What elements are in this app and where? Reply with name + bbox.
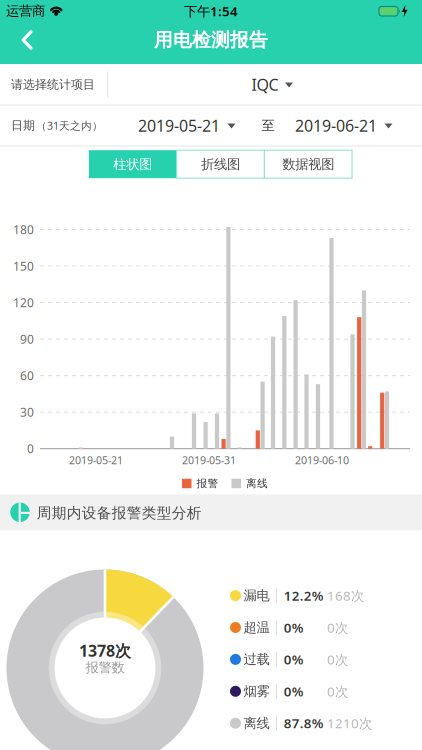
- staticText: 60: [20, 368, 34, 384]
- staticText: 至: [261, 117, 274, 134]
- staticText: 168次: [327, 587, 364, 604]
- staticText: 0次: [327, 650, 348, 668]
- staticText: 0: [27, 441, 34, 457]
- staticText: 30: [20, 404, 34, 420]
- staticText: 90: [20, 331, 34, 347]
- staticText: 87.8%: [284, 714, 324, 732]
- staticText: 1378次: [79, 640, 131, 661]
- button[interactable]: 2019-05-21: [131, 105, 241, 145]
- button[interactable]: 2019-06-21: [288, 105, 398, 145]
- staticText: 2019-06-10: [295, 453, 349, 467]
- staticText: 运营商: [6, 3, 45, 19]
- staticText: 0%: [284, 682, 304, 700]
- staticText: 用电检测报告: [154, 28, 268, 51]
- staticText: 报警数: [85, 659, 124, 676]
- staticText: 150: [13, 258, 34, 274]
- staticText: 2019-05-21: [69, 453, 123, 467]
- staticText: 120: [13, 295, 34, 310]
- staticText: 折线图: [201, 156, 240, 172]
- staticText: 柱状图: [113, 156, 152, 172]
- staticText: 超温: [243, 619, 269, 636]
- staticText: 烟雾: [243, 683, 269, 699]
- staticText: IQC: [251, 74, 278, 95]
- staticText: 2019-06-21: [295, 115, 377, 136]
- staticText: 离线: [243, 715, 269, 731]
- button[interactable]: 数据视图: [264, 150, 352, 178]
- staticText: 漏电: [243, 587, 269, 604]
- staticText: 请选择统计项目: [11, 77, 95, 92]
- staticText: 2019-05-21: [138, 115, 220, 136]
- staticText: 2019-05-31: [182, 453, 236, 467]
- staticText: 周期内设备报警类型分析: [37, 504, 202, 522]
- staticText: 12.2%: [284, 587, 324, 604]
- staticText: 0%: [284, 650, 304, 668]
- staticText: 过载: [243, 651, 269, 668]
- button[interactable]: 返回: [0, 0, 44, 44]
- staticText: 日期: [11, 118, 35, 133]
- button[interactable]: 柱状图: [89, 150, 177, 178]
- staticText: 0%: [284, 619, 304, 636]
- button[interactable]: IQC: [108, 64, 422, 104]
- button[interactable]: 折线图: [177, 150, 264, 178]
- staticText: 数据视图: [282, 156, 334, 172]
- staticText: 下午1:54: [184, 2, 238, 20]
- staticText: 180: [13, 221, 34, 237]
- staticText: （31天之内）: [36, 118, 103, 133]
- staticText: 0次: [327, 682, 348, 700]
- staticText: 1210次: [327, 714, 372, 732]
- staticText: 0次: [327, 619, 348, 636]
- staticText: 报警: [196, 477, 218, 490]
- staticText: 离线: [246, 477, 268, 490]
